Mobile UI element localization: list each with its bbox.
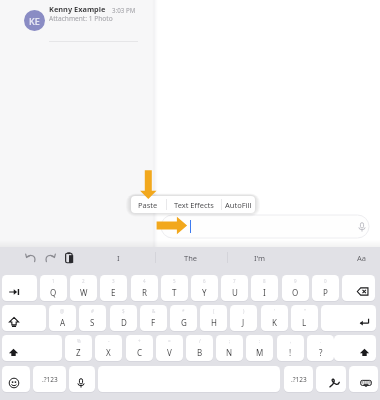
button[interactable]: 5 bbox=[161, 275, 188, 301]
button[interactable]: pencil bbox=[316, 366, 346, 392]
staticText: # bbox=[91, 308, 94, 314]
button[interactable]: Text formatting bbox=[350, 250, 372, 265]
staticText: Aa bbox=[357, 253, 366, 263]
staticText: V bbox=[167, 347, 172, 358]
button[interactable]: ( bbox=[200, 305, 227, 331]
staticText: L bbox=[302, 317, 307, 328]
staticText: / bbox=[199, 338, 201, 344]
button[interactable]: Undo bbox=[24, 251, 38, 265]
staticText: I'm bbox=[254, 253, 266, 263]
staticText: 2 bbox=[82, 278, 85, 284]
staticText: ! bbox=[289, 347, 292, 358]
button[interactable]: I'm bbox=[236, 247, 284, 268]
button[interactable]: / bbox=[186, 335, 213, 361]
button[interactable]: - bbox=[95, 335, 122, 361]
button[interactable]: , bbox=[277, 335, 304, 361]
staticText: Attachment: 1 Photo bbox=[49, 14, 113, 23]
staticText: D bbox=[121, 317, 127, 328]
staticText: @ bbox=[60, 308, 65, 314]
button[interactable]: ' bbox=[261, 305, 288, 331]
button[interactable]: Paste bbox=[131, 196, 165, 213]
staticText: Paste bbox=[138, 200, 158, 210]
staticText: 1 bbox=[52, 278, 55, 284]
button[interactable]: " bbox=[291, 305, 318, 331]
staticText: - bbox=[108, 338, 110, 344]
button[interactable]: tab bbox=[2, 275, 37, 301]
staticText: 3:03 PM bbox=[112, 6, 136, 14]
staticText: T bbox=[172, 287, 177, 298]
staticText: . bbox=[320, 338, 322, 344]
button[interactable]: Paste bbox=[62, 251, 76, 265]
staticText: , bbox=[290, 338, 292, 344]
button[interactable]: . bbox=[307, 335, 334, 361]
button[interactable]: shift bbox=[2, 335, 62, 361]
button[interactable]: = bbox=[156, 335, 183, 361]
button[interactable]: caps bbox=[2, 305, 46, 331]
button[interactable]: ) bbox=[230, 305, 257, 331]
button[interactable]: 9 bbox=[282, 275, 309, 301]
staticText: Q bbox=[50, 287, 57, 298]
button[interactable]: shiftR bbox=[334, 335, 376, 361]
button[interactable]: .?123 bbox=[284, 366, 313, 392]
staticText: 6 bbox=[203, 278, 206, 284]
staticText: 5 bbox=[173, 278, 176, 284]
button[interactable]: 8 bbox=[251, 275, 278, 301]
staticText: AutoFill bbox=[225, 200, 252, 210]
button[interactable]: kbd bbox=[349, 366, 378, 392]
button[interactable]: : bbox=[246, 335, 273, 361]
button[interactable]: # bbox=[79, 305, 106, 331]
staticText: X bbox=[106, 347, 111, 358]
staticText: $ bbox=[122, 308, 125, 314]
staticText: Y bbox=[202, 287, 207, 298]
button[interactable]: KE bbox=[0, 6, 156, 46]
button[interactable]: Redo bbox=[43, 251, 57, 265]
button[interactable]: 7 bbox=[221, 275, 248, 301]
button[interactable]: 3 bbox=[100, 275, 127, 301]
button[interactable]: ; bbox=[216, 335, 243, 361]
staticText: ( bbox=[213, 308, 215, 314]
staticText: Kenny Example bbox=[49, 4, 106, 14]
staticText: 9 bbox=[294, 278, 297, 284]
staticText: W bbox=[80, 287, 88, 298]
button[interactable]: 2 bbox=[70, 275, 97, 301]
staticText: O bbox=[292, 287, 299, 298]
staticText: K bbox=[272, 317, 277, 328]
button[interactable]: 0 bbox=[312, 275, 339, 301]
button[interactable]: Audio message bbox=[356, 221, 368, 233]
staticText: 7 bbox=[233, 278, 236, 284]
staticText: 8 bbox=[263, 278, 266, 284]
button[interactable]: I bbox=[94, 247, 142, 268]
button[interactable]: AutoFill bbox=[222, 196, 255, 213]
staticText: + bbox=[138, 338, 141, 344]
staticText: B bbox=[197, 347, 203, 358]
button[interactable]: % bbox=[65, 335, 92, 361]
staticText: Text Effects bbox=[174, 200, 214, 210]
button[interactable]: & bbox=[140, 305, 167, 331]
button[interactable]: return bbox=[321, 305, 376, 331]
button[interactable]: + bbox=[126, 335, 153, 361]
staticText: * bbox=[182, 308, 185, 314]
staticText: " bbox=[304, 308, 306, 314]
staticText: J bbox=[242, 317, 245, 328]
button[interactable]: 1 bbox=[40, 275, 67, 301]
staticText: Z bbox=[76, 347, 81, 358]
staticText: P bbox=[323, 287, 328, 298]
button[interactable]: .?123 bbox=[33, 366, 66, 392]
staticText: C bbox=[137, 347, 143, 358]
button[interactable]: Text Effects bbox=[167, 196, 221, 213]
button[interactable] bbox=[161, 215, 369, 238]
button[interactable]: backspace bbox=[342, 275, 375, 301]
button[interactable]: $ bbox=[110, 305, 137, 331]
button[interactable]: The bbox=[167, 247, 215, 268]
staticText: The bbox=[184, 253, 198, 263]
button[interactable]: @ bbox=[49, 305, 76, 331]
button[interactable]: mic bbox=[69, 366, 95, 392]
staticText: : bbox=[259, 338, 261, 344]
button[interactable]: emoji bbox=[2, 366, 30, 392]
staticText: ; bbox=[229, 338, 231, 344]
button[interactable]: * bbox=[170, 305, 197, 331]
button[interactable]: 6 bbox=[191, 275, 218, 301]
staticText: .?123 bbox=[291, 375, 307, 384]
button[interactable]: 4 bbox=[131, 275, 158, 301]
